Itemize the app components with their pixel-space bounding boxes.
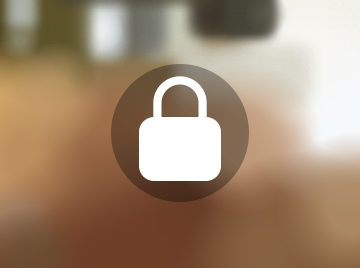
- button[interactable]: Locked: [111, 64, 249, 202]
